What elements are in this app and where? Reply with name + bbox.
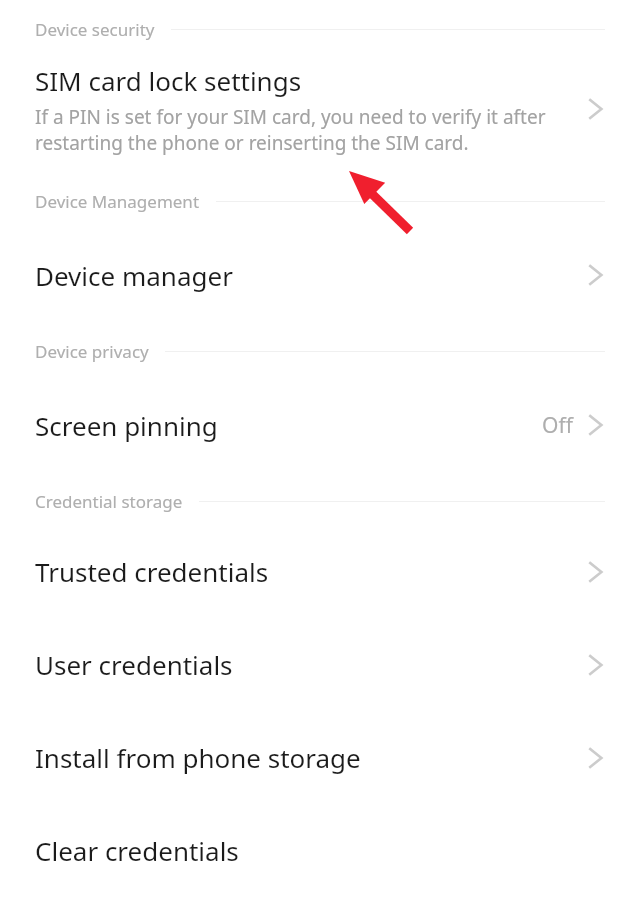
staticText: Clear credentials — [35, 833, 239, 868]
button[interactable]: Screen pinning — [0, 375, 640, 475]
button[interactable]: Install from phone storage — [0, 711, 640, 804]
button[interactable]: Trusted credentials — [0, 525, 640, 618]
staticText: Device privacy — [35, 340, 149, 363]
staticText: Device Management — [35, 190, 200, 213]
staticText: Device manager — [35, 258, 233, 293]
staticText: Credential storage — [35, 490, 183, 513]
staticText: SIM card lock settings — [35, 63, 302, 98]
button[interactable]: Clear credentials — [0, 804, 640, 897]
staticText: Device security — [35, 18, 155, 41]
staticText: Install from phone storage — [35, 740, 361, 775]
staticText: User credentials — [35, 647, 233, 682]
staticText: Trusted credentials — [35, 554, 269, 589]
staticText: Off — [542, 411, 573, 440]
button[interactable]: SIM card lock settings — [0, 53, 640, 165]
staticText: Screen pinning — [35, 408, 218, 443]
button[interactable]: User credentials — [0, 618, 640, 711]
button[interactable]: Device manager — [0, 225, 640, 325]
staticText: If a PIN is set for your SIM card, you n… — [35, 104, 546, 156]
